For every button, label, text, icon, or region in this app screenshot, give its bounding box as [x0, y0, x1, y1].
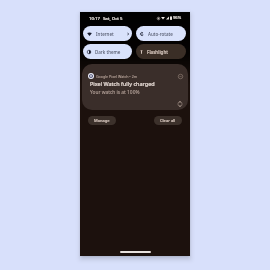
staticText: Dark theme — [95, 49, 121, 55]
button[interactable]: Google Pixel Watch • 2m — [82, 64, 188, 110]
staticText: 96% — [173, 15, 182, 21]
staticText: 10:17 — [89, 15, 100, 21]
button[interactable]: Dark theme — [83, 44, 132, 59]
button[interactable]: Auto-rotate — [136, 26, 186, 41]
staticText: Clear all — [160, 118, 176, 123]
staticText: Internet — [96, 31, 114, 37]
button[interactable]: Internet — [83, 26, 132, 41]
staticText: Your watch is at 100% — [90, 89, 140, 96]
button[interactable]: Flashlight — [136, 44, 186, 59]
staticText: Google Pixel Watch • 2m — [96, 74, 138, 79]
staticText: Auto-rotate — [148, 31, 173, 37]
button[interactable]: Manage — [88, 116, 116, 125]
staticText: Sat, Oct 5 — [103, 15, 123, 21]
staticText: Manage — [94, 118, 110, 123]
staticText: Flashlight — [147, 49, 168, 55]
staticText: Pixel Watch fully charged — [90, 80, 155, 87]
other: Expand notification — [178, 74, 183, 79]
button[interactable]: Clear all — [154, 116, 182, 125]
